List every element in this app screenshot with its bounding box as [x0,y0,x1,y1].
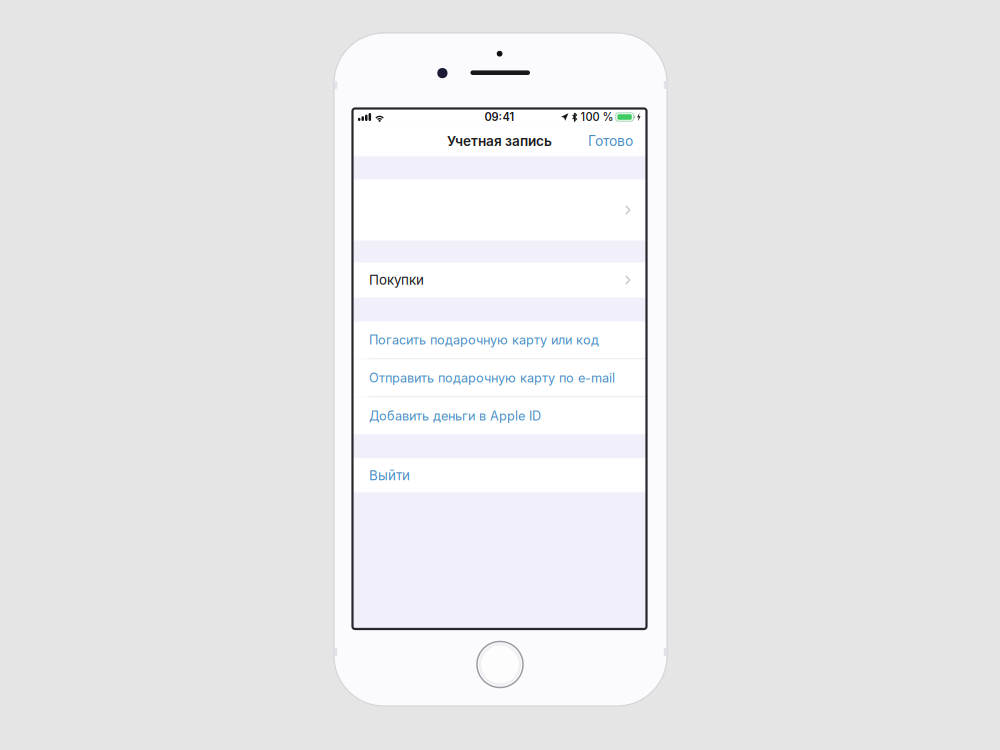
button[interactable]: Готово [579,126,646,156]
button[interactable]: Добавить деньги в Apple ID [352,397,646,434]
staticText: Учетная запись [447,133,552,149]
staticText: 100 % [581,110,614,124]
button[interactable]: Погасить подарочную карту или код [352,321,646,358]
staticText: Добавить деньги в Apple ID [369,408,541,423]
staticText: Покупки [369,272,424,288]
button[interactable]: Выйти [352,458,646,492]
button[interactable]: Отправить подарочную карту по e-mail [352,359,646,396]
staticText: Готово [588,133,633,149]
staticText: 09:41 [484,110,514,124]
button[interactable]: Покупки [352,262,646,297]
button[interactable]: Apple ID [352,179,646,240]
staticText: Выйти [369,467,410,483]
staticText: Погасить подарочную карту или код [369,332,599,348]
staticText: Отправить подарочную карту по e-mail [369,370,615,385]
